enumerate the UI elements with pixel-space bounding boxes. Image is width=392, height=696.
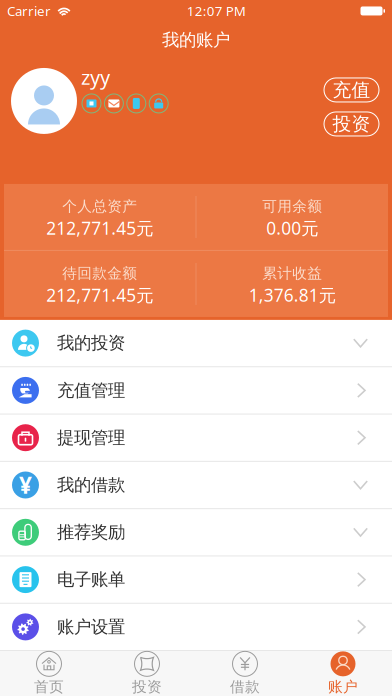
button[interactable]: 借款 xyxy=(196,651,294,696)
staticText: 我的投资 xyxy=(57,332,125,354)
staticText: 投资 xyxy=(332,112,370,135)
button[interactable]: 充值 xyxy=(324,78,379,102)
button[interactable]: 投资 xyxy=(98,651,196,696)
button[interactable]: 账户设置 xyxy=(0,604,392,650)
staticText: 待回款金额 xyxy=(62,264,137,282)
staticText: 账户设置 xyxy=(57,616,125,638)
staticText: 个人总资产 xyxy=(62,197,137,215)
button[interactable]: 投资 xyxy=(324,112,379,136)
staticText: 账户 xyxy=(328,678,358,696)
staticText: ¥ xyxy=(19,470,32,500)
button[interactable]: 充值管理 xyxy=(0,367,392,413)
staticText: zyy xyxy=(81,64,110,90)
staticText: 12:07 PM xyxy=(187,2,246,20)
staticText: 充值 xyxy=(332,78,370,101)
button[interactable]: 推荐奖励 xyxy=(0,509,392,555)
button[interactable]: 电子账单 xyxy=(0,556,392,603)
staticText: 累计收益 xyxy=(262,264,322,282)
button[interactable]: 账户 xyxy=(294,651,392,696)
staticText: 投资 xyxy=(132,678,162,696)
staticText: 借款 xyxy=(230,678,260,696)
staticText: 我的借款 xyxy=(57,474,125,496)
button[interactable]: 提现管理 xyxy=(0,414,392,461)
staticText: 0.00元 xyxy=(266,216,318,239)
staticText: 212,771.45元 xyxy=(46,283,153,306)
staticText: 1,376.81元 xyxy=(249,283,336,306)
staticText: 可用余额 xyxy=(262,197,322,215)
staticText: 推荐奖励 xyxy=(57,522,125,543)
staticText: 充值管理 xyxy=(57,380,125,401)
staticText: 电子账单 xyxy=(57,569,125,590)
staticText: 首页 xyxy=(34,678,64,696)
staticText: 212,771.45元 xyxy=(46,216,153,239)
staticText: 提现管理 xyxy=(57,427,125,448)
button[interactable]: ¥ xyxy=(0,462,392,508)
staticText: 我的账户 xyxy=(162,29,230,51)
button[interactable]: 我的投资 xyxy=(0,320,392,366)
staticText: Carrier xyxy=(7,2,51,20)
button[interactable]: 首页 xyxy=(0,651,98,696)
